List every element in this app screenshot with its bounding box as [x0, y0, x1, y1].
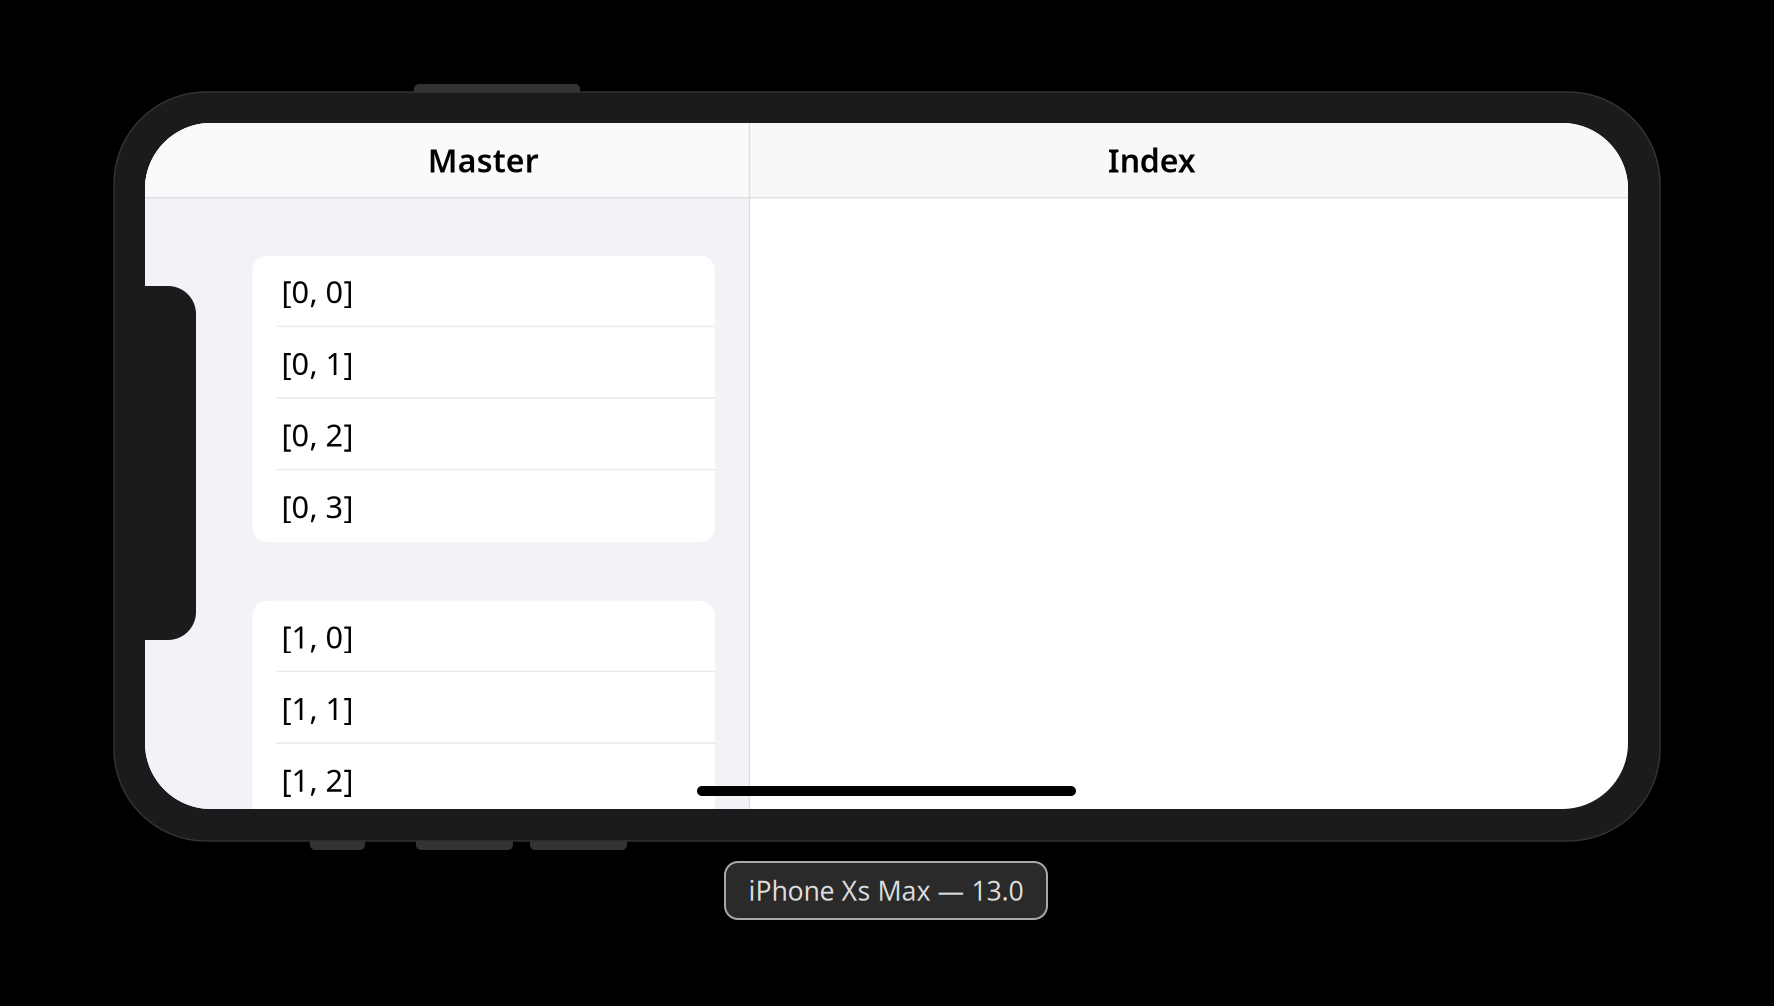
staticText: [1, 1]	[281, 688, 353, 728]
staticText: [0, 3]	[281, 486, 353, 527]
button[interactable]: [1, 0]	[252, 601, 715, 672]
staticText: [1, 2]	[281, 759, 353, 800]
button[interactable]: [1, 1]	[252, 672, 715, 744]
button[interactable]: [0, 2]	[252, 399, 715, 471]
staticText: Master	[428, 139, 539, 181]
staticText: [1, 3]	[281, 831, 353, 872]
button[interactable]: [0, 3]	[252, 471, 715, 542]
staticText: [0, 2]	[281, 414, 353, 455]
staticText: [1, 0]	[281, 616, 353, 657]
staticText: [0, 0]	[281, 271, 353, 312]
staticText: Index	[1108, 139, 1196, 181]
button[interactable]: [1, 3]	[252, 816, 715, 887]
button[interactable]: [0, 0]	[252, 256, 715, 327]
staticText: iPhone Xs Max — 13.0	[748, 873, 1023, 908]
button[interactable]: [0, 1]	[252, 327, 715, 399]
staticText: [0, 1]	[281, 343, 353, 383]
button[interactable]: [1, 2]	[252, 744, 715, 816]
